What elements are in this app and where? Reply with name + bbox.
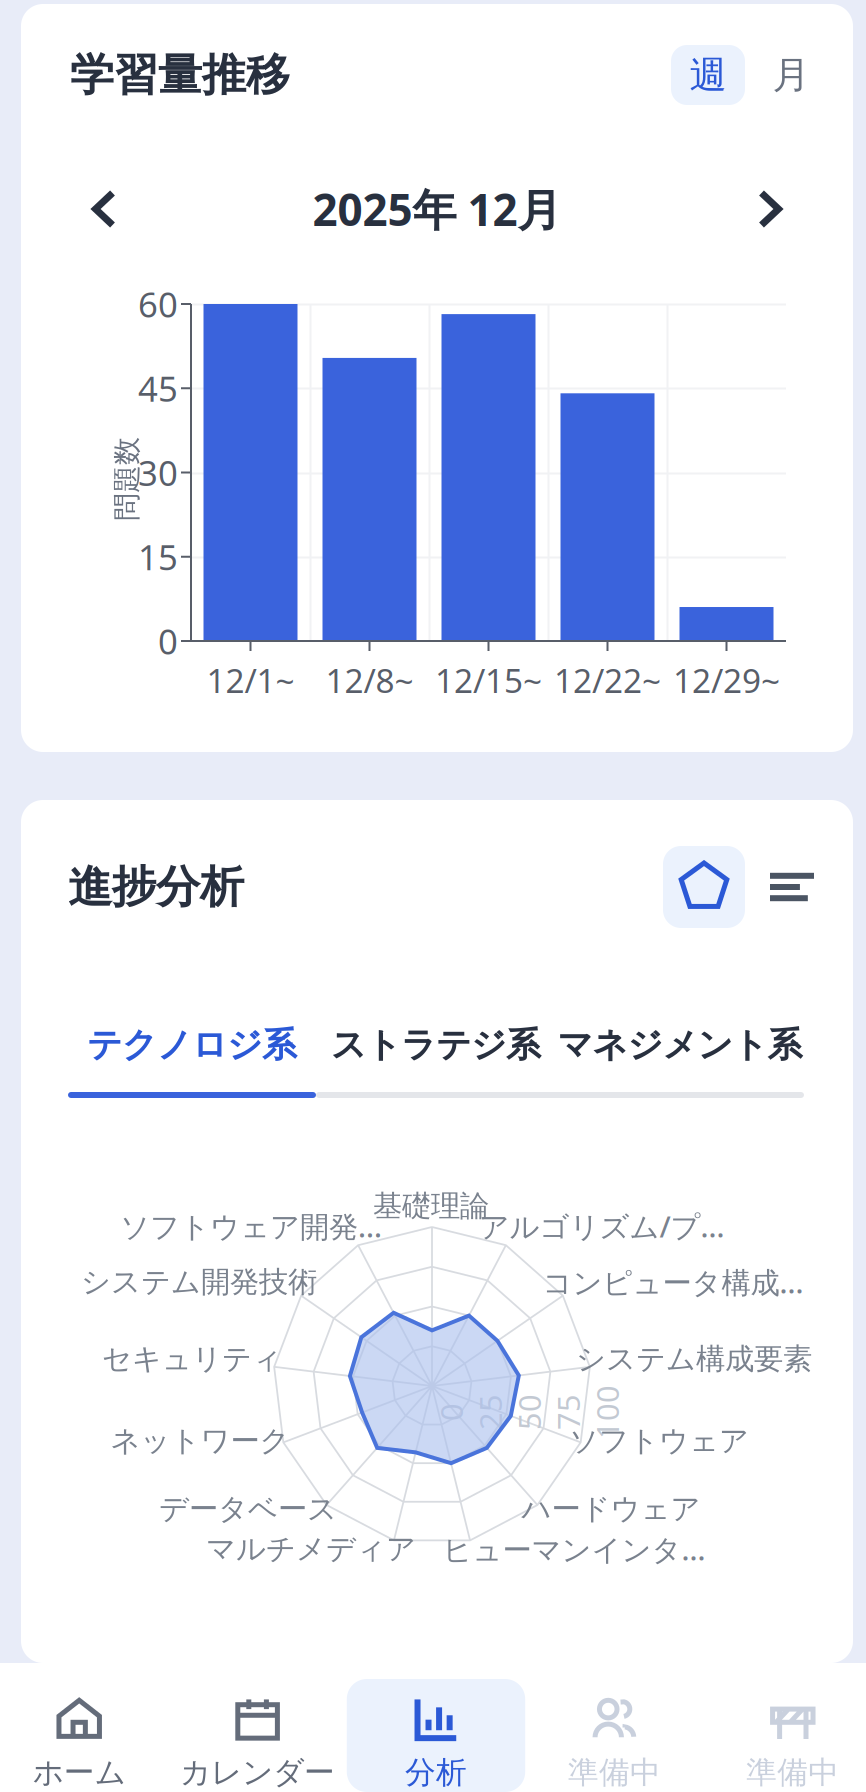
staticText: ヒューマンインタ... [442,1529,705,1568]
staticText: 0 [442,1392,460,1432]
staticText: マルチメディア [206,1531,416,1567]
staticText: 月 [772,52,809,98]
button[interactable]: カレンダー [168,1663,347,1792]
staticText: 12/22~ [554,658,661,702]
staticText: システム開発技術 [81,1264,317,1300]
staticText: 準備中 [746,1754,839,1791]
staticText: ホーム [33,1754,126,1791]
staticText: 基礎理論 [373,1188,489,1224]
button[interactable]: 準備中 [525,1663,704,1792]
staticText: 45 [138,365,178,411]
staticText: カレンダー [180,1754,335,1791]
staticText: セキュリティ [102,1341,282,1377]
staticText: 準備中 [568,1754,661,1791]
staticText: 12/1~ [206,658,294,702]
staticText: 25 [472,1392,508,1432]
button[interactable]: 次の月 [737,176,803,242]
staticText: システム構成要素 [576,1341,812,1377]
staticText: 15 [138,534,178,580]
staticText: 75 [550,1392,586,1432]
staticText: 12/8~ [325,658,413,702]
staticText: データベース [159,1491,337,1527]
staticText: アルゴリズム/プ... [479,1206,724,1245]
button[interactable]: 分析 [347,1663,525,1792]
staticText: ハードウェア [521,1491,700,1527]
button[interactable]: リスト表示 [753,846,831,928]
staticText: 12/29~ [673,658,780,702]
staticText: ソフトウェア [569,1423,749,1459]
staticText: ストラテジ系 [331,1024,541,1066]
staticText: 100 [580,1392,634,1432]
button[interactable]: 週 [671,45,745,105]
staticText: マネジメント系 [557,1024,802,1066]
staticText: 60 [138,281,178,327]
staticText: 0 [158,618,178,664]
staticText: 問題数 [85,462,169,496]
staticText: テクノロジ系 [87,1024,297,1066]
button[interactable]: テクノロジ系 [68,1022,316,1068]
staticText: ネットワーク [110,1423,289,1459]
staticText: コンピュータ構成... [542,1262,803,1301]
staticText: 週 [689,52,726,98]
button[interactable]: ストラテジ系 [316,1022,556,1068]
button[interactable]: レーダーチャート表示 [663,846,745,928]
button[interactable]: 前の月 [71,176,137,242]
staticText: 30 [138,449,178,495]
button[interactable]: マネジメント系 [556,1022,804,1068]
button[interactable]: 月 [765,45,817,105]
staticText: 分析 [405,1754,467,1791]
staticText: 進捗分析 [68,860,244,914]
button[interactable]: 準備中 [704,1663,866,1792]
staticText: 学習量推移 [70,48,290,102]
staticText: 12/15~ [435,658,542,702]
staticText: ソフトウェア開発... [120,1206,382,1245]
staticText: 50 [511,1392,547,1432]
button[interactable]: ホーム [0,1663,168,1792]
staticText: 2025年 12月 [312,180,561,238]
